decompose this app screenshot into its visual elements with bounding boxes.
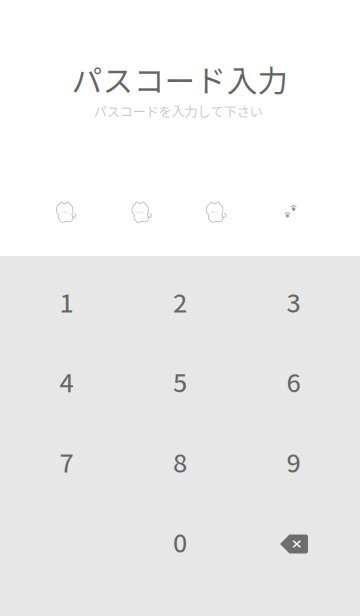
button[interactable]: 9 <box>237 421 350 501</box>
staticText: 8 <box>173 443 187 480</box>
button[interactable]: 4 <box>10 341 123 421</box>
staticText: パスコード入力 <box>71 57 288 101</box>
staticText: 2 <box>173 283 187 320</box>
staticText: 5 <box>173 363 187 400</box>
button[interactable]: 5 <box>123 341 236 421</box>
staticText: 3 <box>286 283 300 320</box>
button[interactable]: 7 <box>10 421 123 501</box>
staticText: パスコードを入力して下さい <box>93 101 262 121</box>
button[interactable]: 3 <box>237 261 350 341</box>
staticText: 1 <box>59 283 73 320</box>
button[interactable]: 8 <box>123 421 236 501</box>
staticText: 9 <box>286 443 300 480</box>
button[interactable]: 1 <box>10 261 123 341</box>
button[interactable]: Delete <box>237 504 350 584</box>
staticText: 4 <box>59 363 73 400</box>
staticText: 0 <box>173 523 187 560</box>
button[interactable]: 2 <box>123 261 236 341</box>
button[interactable]: 0 <box>123 501 236 581</box>
button[interactable]: 6 <box>237 341 350 421</box>
staticText: 7 <box>59 443 73 480</box>
staticText: 6 <box>286 363 300 400</box>
